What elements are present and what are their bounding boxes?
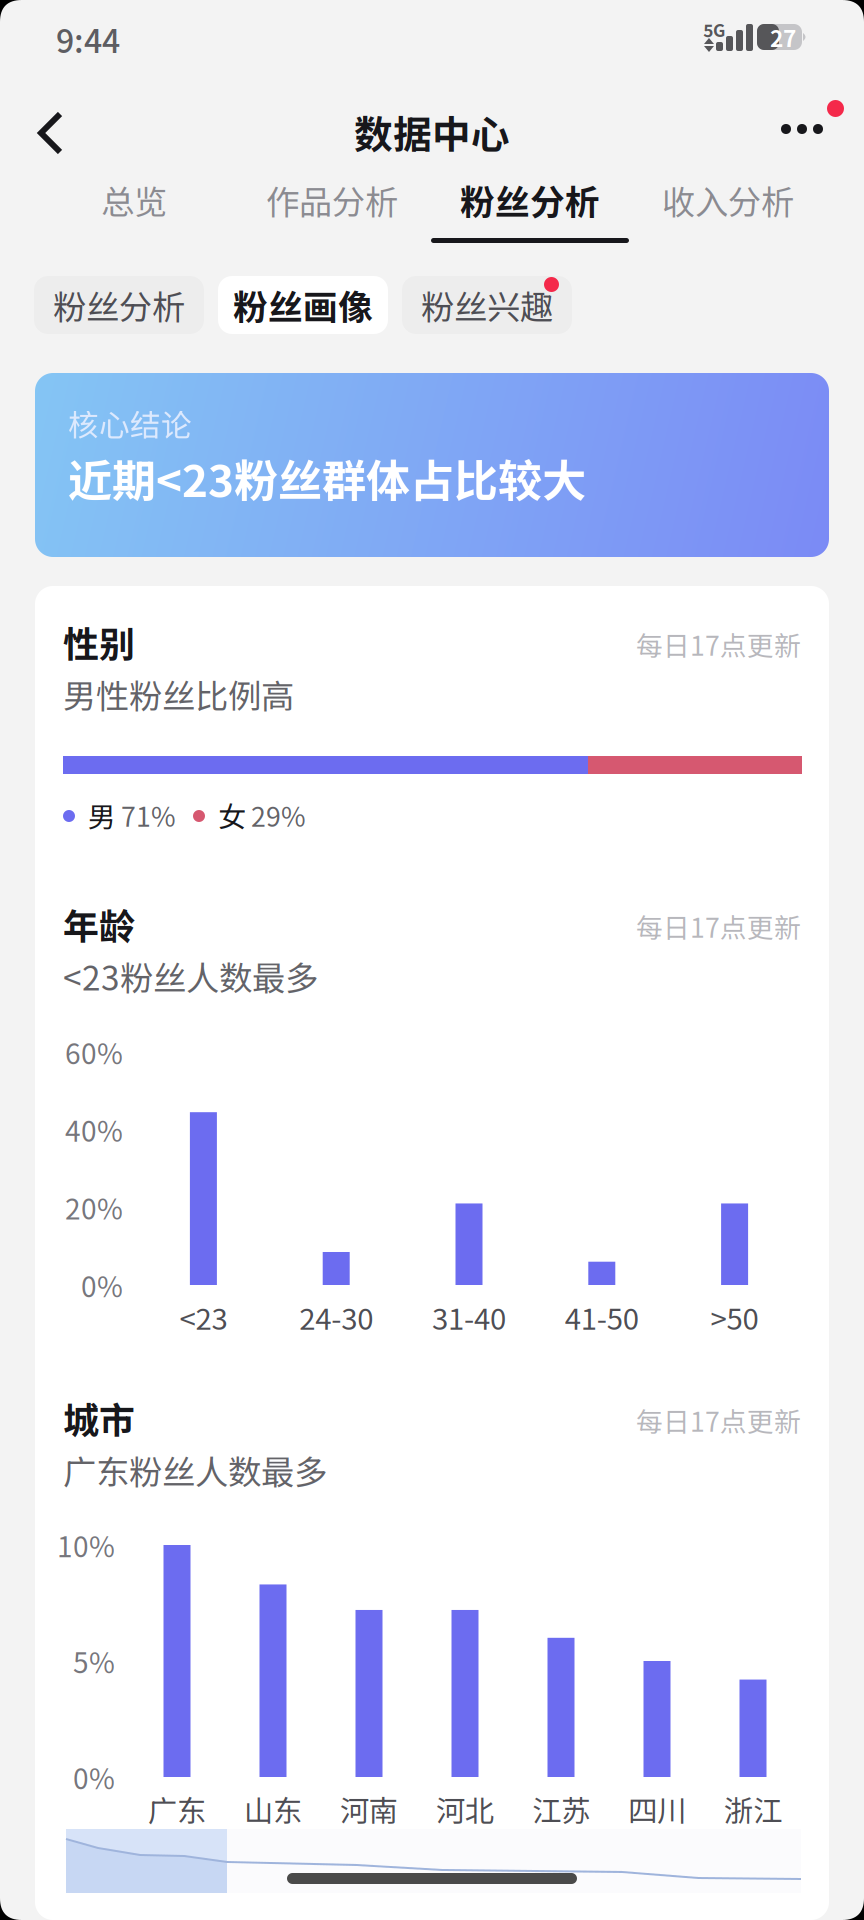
staticText: >50 [711, 1296, 759, 1338]
staticText: 山东 [244, 1788, 302, 1830]
staticText: 城市 [63, 1392, 135, 1444]
staticText: 31-40 [432, 1296, 506, 1338]
button[interactable]: 收入分析 [629, 176, 827, 256]
staticText: 河北 [436, 1788, 494, 1830]
staticText: 24-30 [299, 1296, 373, 1338]
button[interactable]: More options [762, 88, 856, 176]
staticText: 40% [65, 1109, 123, 1150]
staticText: 总览 [101, 176, 167, 224]
staticText: 女 [218, 795, 246, 835]
button[interactable]: 粉丝分析 [34, 276, 204, 334]
staticText: 0% [81, 1265, 123, 1305]
staticText: 27 [770, 21, 796, 53]
staticText: 41-50 [565, 1296, 639, 1338]
staticText: 粉丝兴趣 [421, 281, 553, 329]
staticText: 浙江 [724, 1788, 782, 1830]
staticText: <23 [179, 1296, 227, 1338]
staticText: 核心结论 [68, 401, 192, 445]
staticText: 粉丝分析 [460, 175, 600, 225]
staticText: 0% [73, 1757, 115, 1797]
staticText: 年龄 [63, 898, 135, 950]
button[interactable]: 粉丝画像 [218, 276, 388, 334]
staticText: 71% [121, 796, 176, 834]
staticText: 5% [73, 1641, 115, 1681]
staticText: 作品分析 [266, 176, 398, 224]
button[interactable]: 粉丝兴趣 [402, 276, 572, 334]
staticText: 性别 [63, 616, 135, 668]
staticText: 20% [65, 1187, 123, 1228]
staticText: 河南 [340, 1788, 398, 1830]
staticText: 60% [65, 1032, 123, 1072]
staticText: 广东粉丝人数最多 [63, 1446, 327, 1494]
button[interactable]: 总览 [35, 176, 233, 256]
staticText: 每日17点更新 [636, 625, 801, 663]
staticText: 10% [57, 1525, 115, 1565]
staticText: 四川 [628, 1788, 686, 1830]
staticText: 29% [251, 796, 306, 834]
staticText: 男性粉丝比例高 [63, 670, 294, 718]
button[interactable]: Back [0, 88, 96, 176]
staticText: 收入分析 [662, 176, 794, 224]
staticText: 近期<23粉丝群体占比较大 [68, 446, 586, 510]
staticText: 每日17点更新 [636, 1401, 801, 1439]
button[interactable]: 作品分析 [233, 176, 431, 256]
staticText: 数据中心 [354, 104, 510, 160]
staticText: 广东 [148, 1788, 206, 1830]
staticText: 5G [703, 17, 725, 42]
staticText: 江苏 [532, 1788, 590, 1830]
staticText: 粉丝分析 [53, 281, 185, 329]
staticText: 男 [88, 795, 116, 835]
staticText: 9:44 [56, 16, 120, 62]
button[interactable]: 粉丝分析 [431, 176, 629, 256]
staticText: <23粉丝人数最多 [63, 952, 318, 1000]
staticText: 粉丝画像 [233, 280, 373, 330]
staticText: 每日17点更新 [636, 907, 801, 945]
